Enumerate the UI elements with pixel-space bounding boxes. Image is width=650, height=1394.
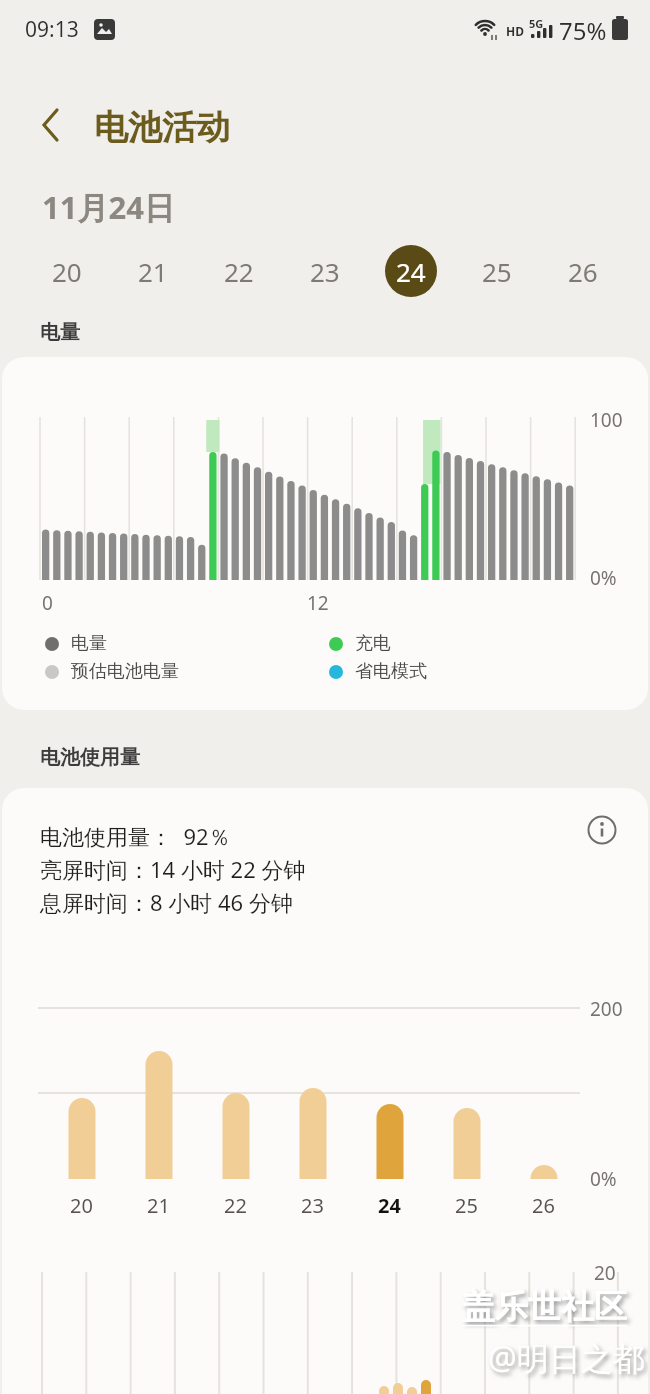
staticText: HD: [506, 23, 524, 39]
staticText: 25: [455, 1192, 478, 1219]
staticText: 24: [378, 1192, 401, 1219]
staticText: 电池使用量： 92％: [40, 821, 231, 851]
staticText: 24: [396, 254, 426, 289]
staticText: 预估电池电量: [71, 660, 179, 683]
staticText: 20: [594, 1260, 616, 1286]
staticText: 5G: [529, 16, 544, 31]
staticText: 22: [224, 1192, 247, 1219]
staticText: 26: [532, 1192, 555, 1219]
staticText: 100: [590, 407, 623, 433]
button[interactable]: [30, 100, 74, 150]
staticText: 电量: [71, 632, 107, 655]
staticText: 20: [70, 1192, 93, 1219]
staticText: 200: [590, 996, 623, 1022]
staticText: 盖乐世社区: [462, 1286, 627, 1328]
staticText: 23: [310, 254, 340, 289]
staticText: 0%: [590, 565, 617, 591]
button[interactable]: 25: [454, 242, 540, 300]
staticText: 21: [138, 254, 168, 289]
staticText: 电池使用量: [40, 745, 140, 770]
button[interactable]: 22: [196, 242, 282, 300]
staticText: 26: [568, 254, 598, 289]
staticText: 息屏时间：8 小时 46 分钟: [40, 887, 293, 917]
staticText: 电池活动: [94, 106, 230, 149]
button[interactable]: 21: [110, 242, 196, 300]
staticText: 75%: [559, 14, 607, 47]
button[interactable]: 26: [540, 242, 626, 300]
staticText: 0: [42, 590, 53, 616]
button[interactable]: [586, 814, 618, 846]
staticText: 电量: [40, 320, 80, 345]
button[interactable]: 24: [368, 242, 454, 300]
button[interactable]: 23: [282, 242, 368, 300]
staticText: 省电模式: [355, 660, 427, 683]
staticText: 20: [52, 254, 82, 289]
button[interactable]: 20: [24, 242, 110, 300]
staticText: 21: [147, 1192, 170, 1219]
staticText: 11月24日: [42, 186, 175, 228]
staticText: 23: [301, 1192, 324, 1219]
staticText: 12: [307, 590, 329, 616]
staticText: 22: [224, 254, 254, 289]
staticText: 25: [482, 254, 512, 289]
staticText: 0%: [590, 1166, 617, 1192]
staticText: @明日之都: [488, 1336, 645, 1380]
staticText: 充电: [355, 632, 391, 655]
staticText: 亮屏时间：14 小时 22 分钟: [40, 854, 306, 884]
staticText: 09:13: [25, 15, 79, 44]
